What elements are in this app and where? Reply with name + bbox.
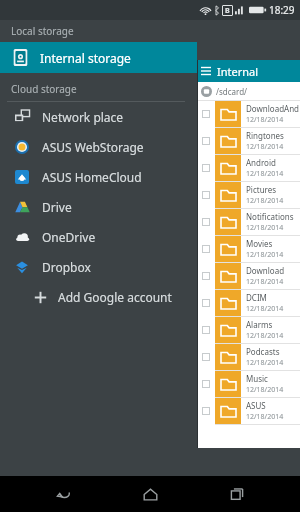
staticText: 12/18/2014 bbox=[246, 331, 284, 341]
button[interactable]: Add Google account bbox=[0, 282, 197, 312]
button[interactable]: Select Movies bbox=[197, 236, 300, 262]
button[interactable]: Select Movies bbox=[202, 245, 210, 253]
staticText: ASUS WebStorage bbox=[42, 139, 144, 155]
staticText: DCIM bbox=[246, 292, 267, 303]
staticText: 18:29 bbox=[269, 3, 295, 17]
button[interactable]: Select ASUS bbox=[202, 407, 210, 415]
button[interactable]: Select Music bbox=[197, 371, 300, 397]
staticText: Cloud storage bbox=[11, 82, 77, 96]
staticText: 12/18/2014 bbox=[246, 412, 284, 422]
staticText: Internal storage bbox=[217, 64, 300, 79]
staticText: Drive bbox=[42, 199, 72, 215]
staticText: 12/18/2014 bbox=[246, 142, 284, 152]
staticText: 12/18/2014 bbox=[246, 169, 284, 179]
button[interactable]: Select Download bbox=[202, 272, 210, 280]
button[interactable]: Select Podcasts bbox=[202, 353, 210, 361]
staticText: 12/18/2014 bbox=[246, 304, 284, 314]
staticText: Network place bbox=[42, 109, 124, 125]
staticText: Pictures bbox=[246, 184, 277, 195]
button[interactable]: Select Podcasts bbox=[197, 344, 300, 370]
staticText: 12/18/2014 bbox=[246, 358, 284, 368]
staticText: Podcasts bbox=[246, 346, 280, 357]
button[interactable]: Dropbox bbox=[0, 252, 197, 282]
button[interactable]: Home bbox=[127, 476, 173, 512]
button[interactable]: Select Notifications bbox=[197, 209, 300, 235]
staticText: 12/18/2014 bbox=[246, 277, 284, 287]
staticText: 12/18/2014 bbox=[246, 250, 284, 260]
button[interactable]: Select DownloadAndUp bbox=[202, 110, 210, 118]
staticText: B bbox=[225, 6, 230, 16]
staticText: Movies bbox=[246, 238, 273, 249]
staticText: Internal storage bbox=[40, 50, 131, 66]
button[interactable]: Select Ringtones bbox=[197, 128, 300, 154]
button[interactable]: Network place bbox=[0, 102, 197, 132]
button[interactable]: Select Download bbox=[197, 263, 300, 289]
button[interactable]: ASUS HomeCloud bbox=[0, 162, 197, 192]
staticText: Alarms bbox=[246, 319, 273, 330]
button[interactable]: Select DownloadAndUp bbox=[197, 101, 300, 127]
button[interactable]: Recent apps bbox=[214, 476, 260, 512]
staticText: Android bbox=[246, 157, 276, 168]
button[interactable]: Select Ringtones bbox=[202, 137, 210, 145]
button[interactable]: Select DCIM bbox=[202, 299, 210, 307]
staticText: ASUS bbox=[246, 400, 266, 411]
staticText: Notifications bbox=[246, 211, 294, 222]
button[interactable]: Select Music bbox=[202, 380, 210, 388]
button[interactable]: Back bbox=[41, 476, 87, 512]
staticText: Local storage bbox=[11, 24, 74, 38]
staticText: DownloadAndUp bbox=[246, 103, 300, 114]
button[interactable]: Select DCIM bbox=[197, 290, 300, 316]
staticText: Dropbox bbox=[42, 259, 91, 275]
button[interactable]: Select Alarms bbox=[197, 317, 300, 343]
button[interactable]: Select Pictures bbox=[197, 182, 300, 208]
button[interactable]: Select Pictures bbox=[202, 191, 210, 199]
button[interactable]: Select Android bbox=[197, 155, 300, 181]
staticText: Add Google account bbox=[58, 289, 172, 305]
staticText: Ringtones bbox=[246, 130, 284, 141]
staticText: ASUS HomeCloud bbox=[42, 169, 142, 185]
button[interactable]: Select Alarms bbox=[202, 326, 210, 334]
staticText: 12/18/2014 bbox=[246, 385, 284, 395]
button[interactable]: Open navigation drawer bbox=[197, 62, 215, 80]
staticText: 12/18/2014 bbox=[246, 223, 284, 233]
button[interactable]: Drive bbox=[0, 192, 197, 222]
staticText: 12/18/2014 bbox=[246, 115, 284, 125]
staticText: Music bbox=[246, 373, 268, 384]
button[interactable]: Internal storage bbox=[0, 42, 197, 73]
staticText: Download bbox=[246, 265, 285, 276]
button[interactable]: Select Notifications bbox=[202, 218, 210, 226]
staticText: /sdcard/ bbox=[216, 86, 248, 97]
button[interactable]: OneDrive bbox=[0, 222, 197, 252]
staticText: OneDrive bbox=[42, 229, 96, 245]
button[interactable]: Select Android bbox=[202, 164, 210, 172]
button[interactable]: /sdcard/ bbox=[197, 82, 300, 100]
staticText: 12/18/2014 bbox=[246, 196, 284, 206]
button[interactable]: Select ASUS bbox=[197, 398, 300, 424]
button[interactable]: ASUS WebStorage bbox=[0, 132, 197, 162]
